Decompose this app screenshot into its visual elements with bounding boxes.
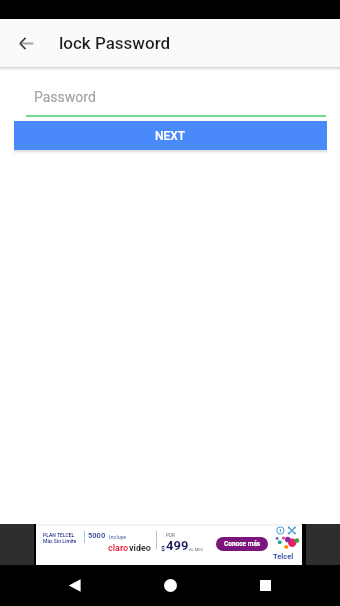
staticText: Conoce más [224,540,261,548]
staticText: 5000 [88,531,106,540]
staticText: $ [161,545,166,553]
staticText: Incluye [109,534,127,540]
button[interactable]: PLAN TELCEL [36,524,302,565]
staticText: POR [166,533,175,538]
staticText: claro [108,543,129,554]
button[interactable]: Recent apps [241,565,289,606]
staticText: NEXT [155,129,186,143]
staticText: Telcel [273,552,294,561]
staticText: lock Password [59,33,171,53]
button[interactable]: Back [50,565,98,606]
button[interactable]: Conoce más [216,537,268,551]
staticText: video [129,543,151,554]
button[interactable]: Navigate up [0,19,48,67]
staticText: Password [34,89,96,105]
staticText: Más Sin Límite [43,538,77,544]
staticText: PLAN TELCEL [43,532,75,538]
button[interactable]: Home [146,565,194,606]
staticText: 499 [166,538,189,553]
button[interactable]: NEXT [14,121,327,150]
staticText: AL MES [189,547,203,552]
